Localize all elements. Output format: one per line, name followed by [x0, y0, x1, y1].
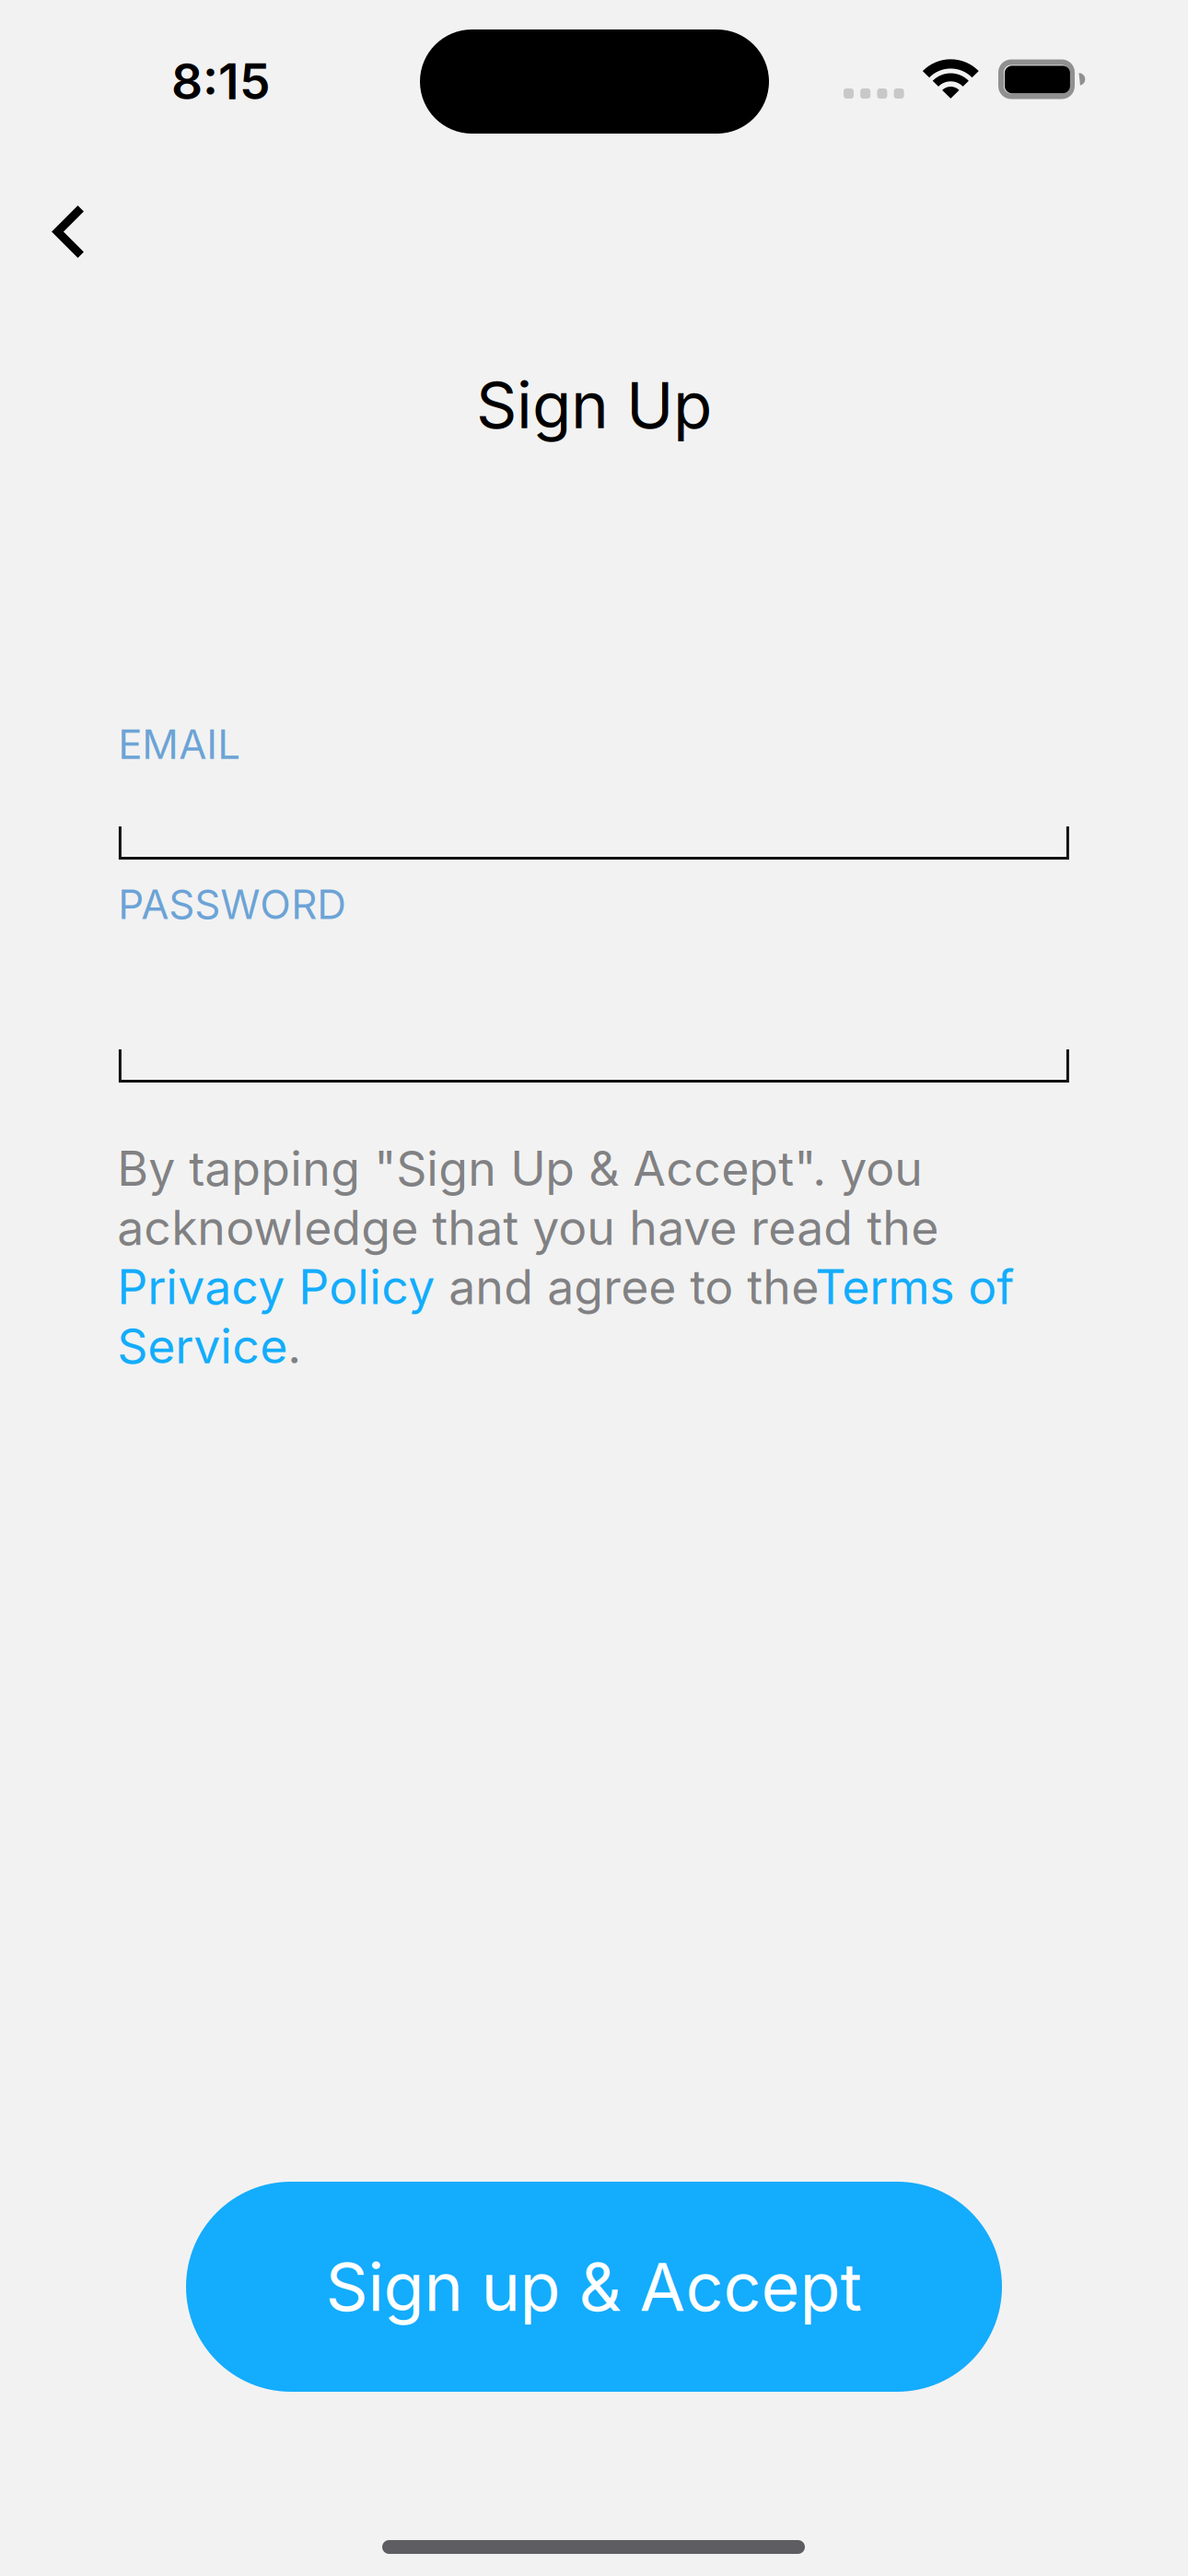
staticText: EMAIL	[118, 720, 241, 769]
staticText: Sign up & Accept	[326, 2247, 862, 2327]
staticText: 8:15	[171, 52, 271, 111]
staticText: PASSWORD	[118, 880, 347, 929]
staticText: Sign Up	[476, 366, 712, 444]
button[interactable]: Sign up & Accept	[186, 2182, 1002, 2392]
button[interactable]: Password	[118, 880, 1069, 1083]
button[interactable]: Email	[118, 720, 1069, 860]
button[interactable]: Back	[8, 172, 128, 292]
staticText: By tapping "Sign Up & Accept". you ackno…	[117, 1140, 1014, 1375]
